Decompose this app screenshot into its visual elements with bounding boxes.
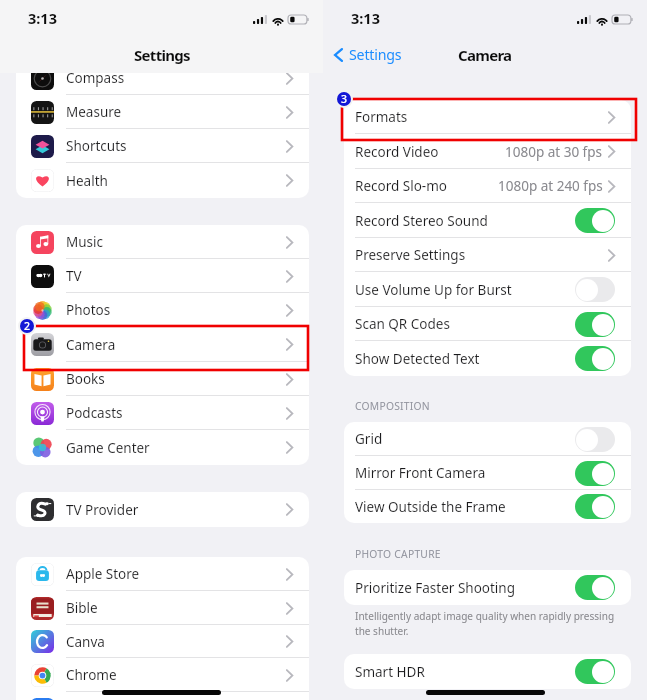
button[interactable]: View Outside the Frame <box>344 490 631 523</box>
button[interactable]: Toggle on <box>575 659 615 684</box>
staticText: Bible <box>66 599 98 617</box>
button[interactable]: Toggle on <box>575 575 615 600</box>
button[interactable]: Toggle on <box>575 461 615 486</box>
staticText: Shortcuts <box>66 137 127 155</box>
staticText: Music <box>66 233 104 251</box>
staticText: Settings <box>349 45 402 64</box>
staticText: TV Provider <box>66 501 139 519</box>
staticText: Books <box>66 370 105 388</box>
staticText: Grid <box>355 430 383 448</box>
button[interactable]: Podcasts <box>16 396 309 430</box>
staticText: 1080p at 240 fps <box>498 177 603 195</box>
button[interactable]: Grid <box>344 422 631 456</box>
staticText: Camera <box>66 336 116 354</box>
staticText: 1080p at 30 fps <box>505 143 603 161</box>
staticText: 3:13 <box>351 8 380 28</box>
button[interactable]: Smart HDR <box>344 654 631 689</box>
staticText: Use Volume Up for Burst <box>355 281 512 299</box>
button[interactable]: TV Provider <box>16 492 309 527</box>
button[interactable]: Canva <box>16 625 309 658</box>
staticText: Chrome <box>66 666 117 684</box>
button[interactable]: Camera <box>16 327 309 362</box>
button[interactable]: Health <box>16 163 309 198</box>
staticText: Record Video <box>355 143 439 161</box>
staticText: Show Detected Text <box>355 350 480 368</box>
button[interactable]: Photos <box>16 293 309 327</box>
button[interactable]: Toggle off <box>575 277 615 302</box>
button[interactable]: Mirror Front Camera <box>344 456 631 490</box>
staticText: TV <box>66 267 82 285</box>
staticText: Compass <box>66 69 125 87</box>
staticText: Photos <box>66 301 111 319</box>
staticText: Preserve Settings <box>355 246 466 264</box>
button[interactable]: Toggle off <box>575 427 615 452</box>
staticText: 2 <box>24 319 31 333</box>
button[interactable]: Compass <box>16 61 309 95</box>
staticText: Mirror Front Camera <box>355 464 486 482</box>
staticText: Scan QR Codes <box>355 315 450 333</box>
staticText: Intelligently adapt image quality when r… <box>355 609 615 638</box>
staticText: View Outside the Frame <box>355 498 506 516</box>
button[interactable]: Toggle on <box>575 208 615 233</box>
staticText: Measure <box>66 103 122 121</box>
button[interactable]: Music <box>16 225 309 259</box>
staticText: Podcasts <box>66 404 123 422</box>
button[interactable]: Preserve Settings <box>344 238 631 272</box>
button[interactable]: Formats <box>344 100 631 134</box>
button[interactable]: Toggle on <box>575 346 615 371</box>
button[interactable]: Use Volume Up for Burst <box>344 272 631 307</box>
staticText: Record Slo-mo <box>355 177 447 195</box>
button[interactable]: Show Detected Text <box>344 341 631 376</box>
button[interactable]: Chrome <box>16 658 309 692</box>
staticText: Game Center <box>66 439 150 457</box>
button[interactable]: TV <box>16 259 309 293</box>
button[interactable]: Record Stereo Sound <box>344 203 631 238</box>
staticText: 3:13 <box>28 8 57 28</box>
staticText: Settings <box>134 45 190 65</box>
button[interactable]: Toggle on <box>575 494 615 519</box>
button[interactable]: Books <box>16 362 309 396</box>
button[interactable]: Settings <box>323 46 402 65</box>
button[interactable]: Clock <box>16 692 309 700</box>
staticText: Record Stereo Sound <box>355 212 488 230</box>
staticText: PHOTO CAPTURE <box>355 547 441 561</box>
staticText: Canva <box>66 633 105 651</box>
staticText: Formats <box>355 108 408 126</box>
button[interactable]: Apple Store <box>16 557 309 591</box>
button[interactable]: Scan QR Codes <box>344 307 631 341</box>
staticText: 3 <box>341 92 348 106</box>
staticText: Smart HDR <box>355 663 425 681</box>
button[interactable]: Record Slo-mo <box>344 169 631 203</box>
button[interactable]: Toggle on <box>575 312 615 337</box>
button[interactable]: Record Video <box>344 134 631 169</box>
staticText: Apple Store <box>66 565 140 583</box>
staticText: Health <box>66 172 108 190</box>
staticText: Prioritize Faster Shooting <box>355 579 515 597</box>
staticText: COMPOSITION <box>355 399 430 413</box>
button[interactable]: Prioritize Faster Shooting <box>344 570 631 605</box>
staticText: Camera <box>458 45 512 65</box>
button[interactable]: Shortcuts <box>16 129 309 163</box>
button[interactable]: Measure <box>16 95 309 129</box>
button[interactable]: Game Center <box>16 430 309 465</box>
button[interactable]: Bible <box>16 591 309 625</box>
